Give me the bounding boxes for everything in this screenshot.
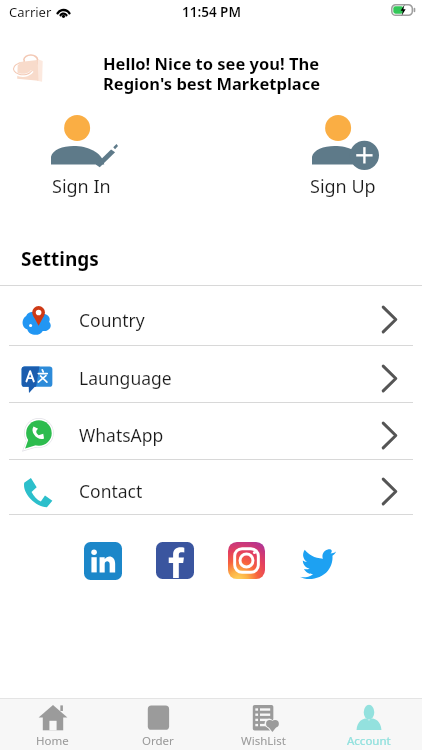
button[interactable]: WishList xyxy=(210,699,316,750)
staticText: WhatsApp xyxy=(79,423,164,447)
staticText: Home xyxy=(36,733,69,749)
staticText: Launguage xyxy=(79,366,172,390)
staticText: WishList xyxy=(241,733,286,749)
button[interactable]: Home xyxy=(0,699,105,750)
button[interactable]: Launguage xyxy=(0,346,422,403)
button[interactable]: Country xyxy=(0,286,422,346)
button[interactable]: Account xyxy=(316,699,422,750)
button[interactable]: LinkedIn xyxy=(84,542,122,580)
button[interactable]: Sign Up xyxy=(306,115,379,199)
button[interactable]: Order xyxy=(105,699,210,750)
staticText: Settings xyxy=(21,246,99,272)
button[interactable]: Facebook xyxy=(156,542,194,579)
staticText: Hello! Nice to see you! The Region's bes… xyxy=(103,52,343,95)
staticText: Account xyxy=(347,733,391,749)
button[interactable]: WhatsApp xyxy=(0,403,422,460)
staticText: Carrier xyxy=(9,3,52,21)
staticText: Country xyxy=(79,308,145,332)
staticText: Sign Up xyxy=(310,174,376,199)
staticText: 11:54 PM xyxy=(182,3,241,21)
button[interactable]: Twitter xyxy=(299,542,337,579)
button[interactable]: Contact xyxy=(0,460,422,515)
staticText: Contact xyxy=(79,479,143,503)
button[interactable]: Sign In xyxy=(45,115,118,199)
staticText: Order xyxy=(142,733,174,749)
staticText: Sign In xyxy=(52,174,111,199)
button[interactable]: Instagram xyxy=(228,542,265,579)
